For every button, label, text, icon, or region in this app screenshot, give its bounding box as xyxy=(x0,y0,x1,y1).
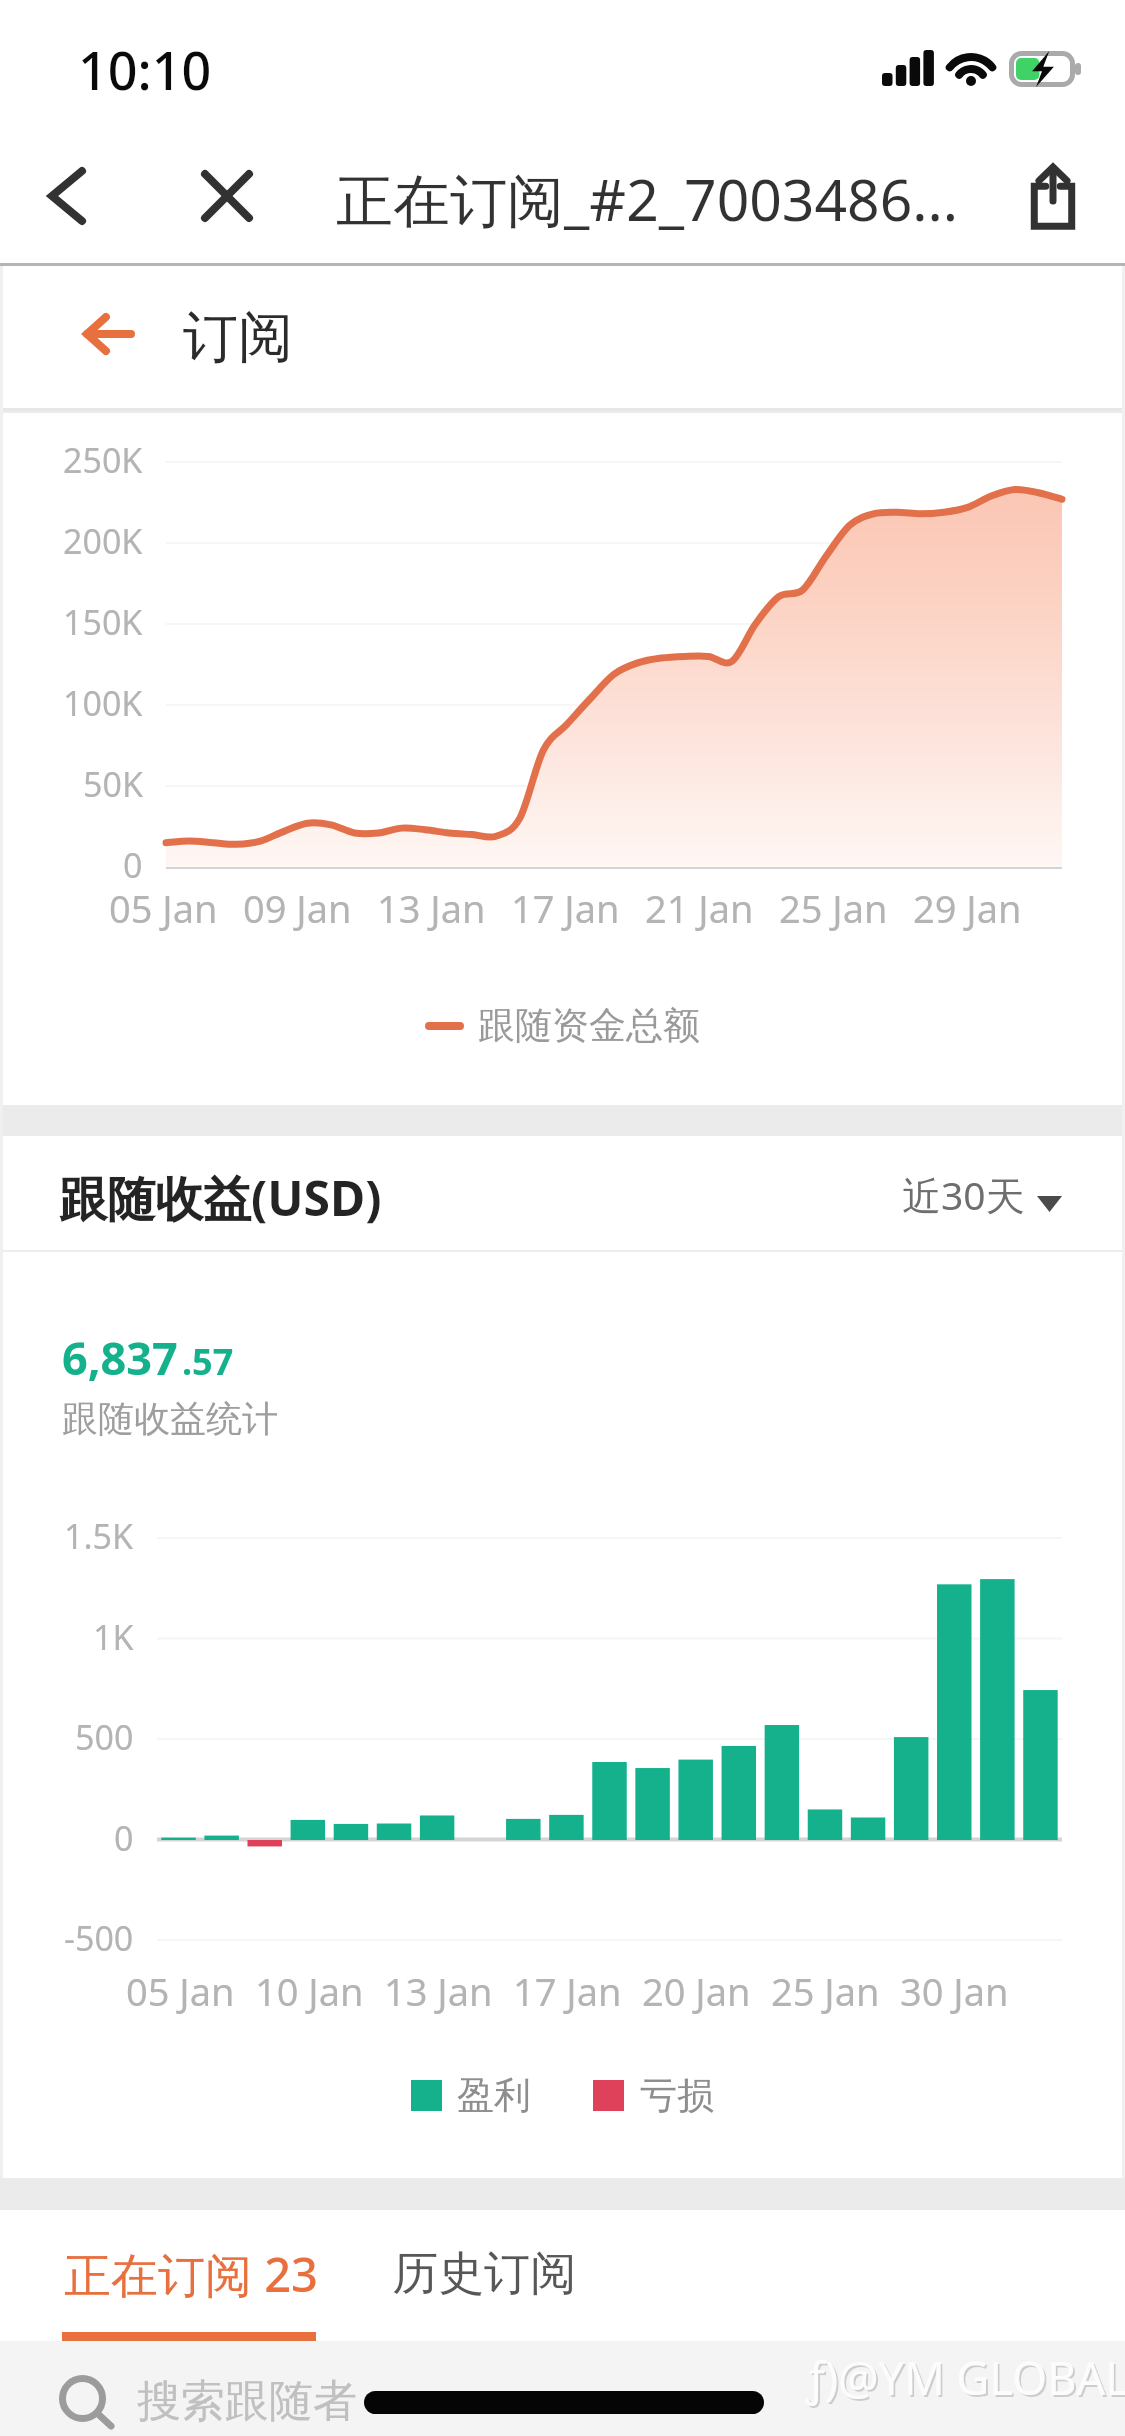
staticText: 150K xyxy=(63,599,143,645)
staticText: 历史订阅 xyxy=(392,2245,576,2303)
staticText: 13 Jan xyxy=(377,882,486,934)
staticText: 近30天 xyxy=(902,1168,1025,1221)
staticText: .57 xyxy=(182,1337,234,1386)
button[interactable]: Back xyxy=(38,261,178,406)
staticText: 搜索跟随者 xyxy=(137,2374,357,2429)
staticText: 25 Jan xyxy=(771,1965,880,2017)
staticText: 21 Jan xyxy=(645,882,754,934)
staticText: 10 Jan xyxy=(255,1965,364,2017)
staticText: 0 xyxy=(123,842,143,888)
staticText: 跟随资金总额 xyxy=(478,1002,700,1049)
staticText: 29 Jan xyxy=(913,882,1022,934)
staticText: -500 xyxy=(64,1915,134,1961)
staticText: 09 Jan xyxy=(243,882,352,934)
staticText: 200K xyxy=(63,518,143,564)
staticText: 订阅 xyxy=(183,303,293,372)
staticText: 100K xyxy=(63,680,143,726)
staticText: 50K xyxy=(83,761,143,807)
button[interactable]: 历史订阅 xyxy=(330,2210,650,2338)
staticText: 30 Jan xyxy=(900,1965,1009,2017)
staticText: 13 Jan xyxy=(384,1965,493,2017)
staticText: 17 Jan xyxy=(511,882,620,934)
staticText: 25 Jan xyxy=(779,882,888,934)
button[interactable]: 近30天 xyxy=(902,1136,1062,1252)
button[interactable]: 正在订阅 23 xyxy=(0,2210,378,2338)
staticText: 亏损 xyxy=(640,2072,714,2119)
staticText: 250K xyxy=(63,437,143,483)
staticText: 10:10 xyxy=(78,34,212,105)
staticText: 盈利 xyxy=(457,2072,531,2119)
staticText: 1K xyxy=(93,1614,134,1660)
staticText: 1.5K xyxy=(64,1513,134,1559)
staticText: 05 Jan xyxy=(126,1965,235,2017)
button[interactable]: Back xyxy=(7,132,127,260)
button[interactable]: Close xyxy=(167,132,287,260)
staticText: 0 xyxy=(114,1815,134,1861)
staticText: 05 Jan xyxy=(109,882,218,934)
staticText: ƒ)@YM GLOBAL xyxy=(808,2349,1125,2410)
staticText: 6,837 xyxy=(62,1327,178,1388)
staticText: 跟随收益统计 xyxy=(62,1396,278,1441)
staticText: 20 Jan xyxy=(642,1965,751,2017)
staticText: ƒ)@YM GLOBAL xyxy=(806,2347,1125,2408)
staticText: 正在订阅_#2_7003486... xyxy=(336,160,959,238)
staticText: 正在订阅 23 xyxy=(64,2242,318,2306)
staticText: 500 xyxy=(75,1714,134,1760)
staticText: 17 Jan xyxy=(513,1965,622,2017)
staticText: 跟随收益(USD) xyxy=(59,1165,382,1231)
button[interactable]: Share xyxy=(993,132,1113,258)
